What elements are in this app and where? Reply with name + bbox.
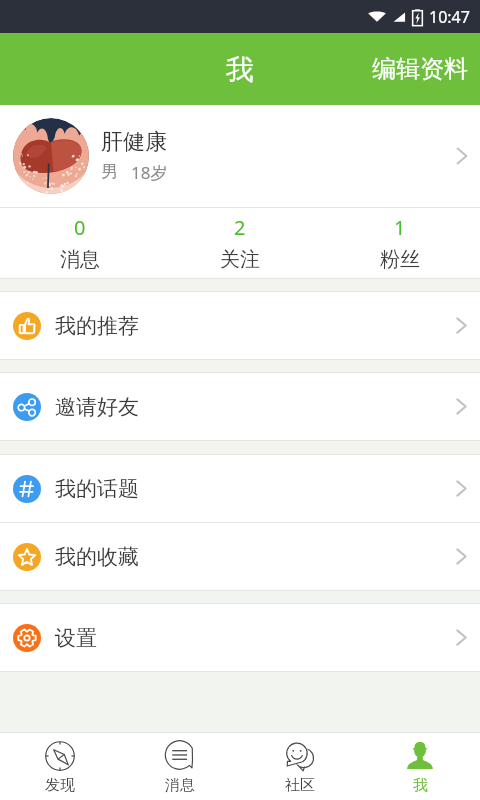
staticText: 1 (394, 214, 406, 241)
staticText: 关注 (220, 247, 260, 272)
button[interactable]: 我的推荐 (0, 292, 480, 359)
staticText: 邀请好友 (55, 394, 451, 420)
button[interactable]: 1 (320, 208, 480, 278)
staticText: 我 (413, 776, 428, 795)
button[interactable]: 社区 (240, 733, 360, 800)
button[interactable]: 我的收藏 (0, 523, 480, 590)
staticText: 我的收藏 (55, 544, 451, 570)
staticText: 粉丝 (380, 247, 420, 272)
button[interactable]: 2 (160, 208, 320, 278)
staticText: 设置 (55, 625, 451, 651)
staticText: 0 (74, 214, 86, 241)
button[interactable]: 邀请好友 (0, 373, 480, 440)
staticText: 发现 (45, 776, 75, 795)
button[interactable]: 我 (360, 733, 480, 800)
button[interactable]: 消息 (120, 733, 240, 800)
button[interactable]: 编辑资料 (357, 33, 480, 105)
button[interactable]: 0 (0, 208, 160, 278)
staticText: 消息 (165, 776, 195, 795)
staticText: 男 (101, 161, 118, 182)
button[interactable]: 肝健康 (0, 105, 480, 207)
button[interactable]: 发现 (0, 733, 120, 800)
staticText: 消息 (60, 247, 100, 272)
staticText: 我 (226, 52, 254, 87)
staticText: 我的推荐 (55, 313, 451, 339)
button[interactable]: 我的话题 (0, 455, 480, 522)
staticText: 18岁 (131, 161, 168, 184)
staticText: 肝健康 (101, 128, 167, 156)
staticText: 我的话题 (55, 476, 451, 502)
staticText: 10:47 (429, 6, 470, 28)
staticText: 2 (234, 214, 246, 241)
staticText: 社区 (285, 776, 315, 795)
button[interactable]: 设置 (0, 604, 480, 671)
staticText: 编辑资料 (372, 54, 468, 84)
